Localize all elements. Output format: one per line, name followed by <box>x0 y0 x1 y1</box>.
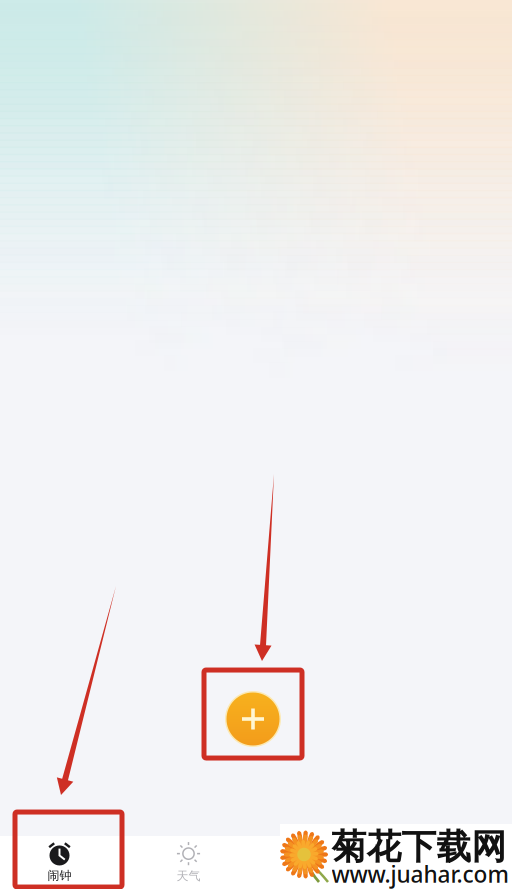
staticText: 闹钟 <box>47 868 71 883</box>
button[interactable]: Add alarm <box>224 690 282 748</box>
staticText: www.juahar.com <box>331 859 508 889</box>
staticText: 菊花下载网 <box>331 826 506 868</box>
staticText: 天气 <box>176 869 200 883</box>
button[interactable]: 天气 <box>119 836 258 889</box>
button[interactable]: 闹钟 <box>0 836 119 889</box>
